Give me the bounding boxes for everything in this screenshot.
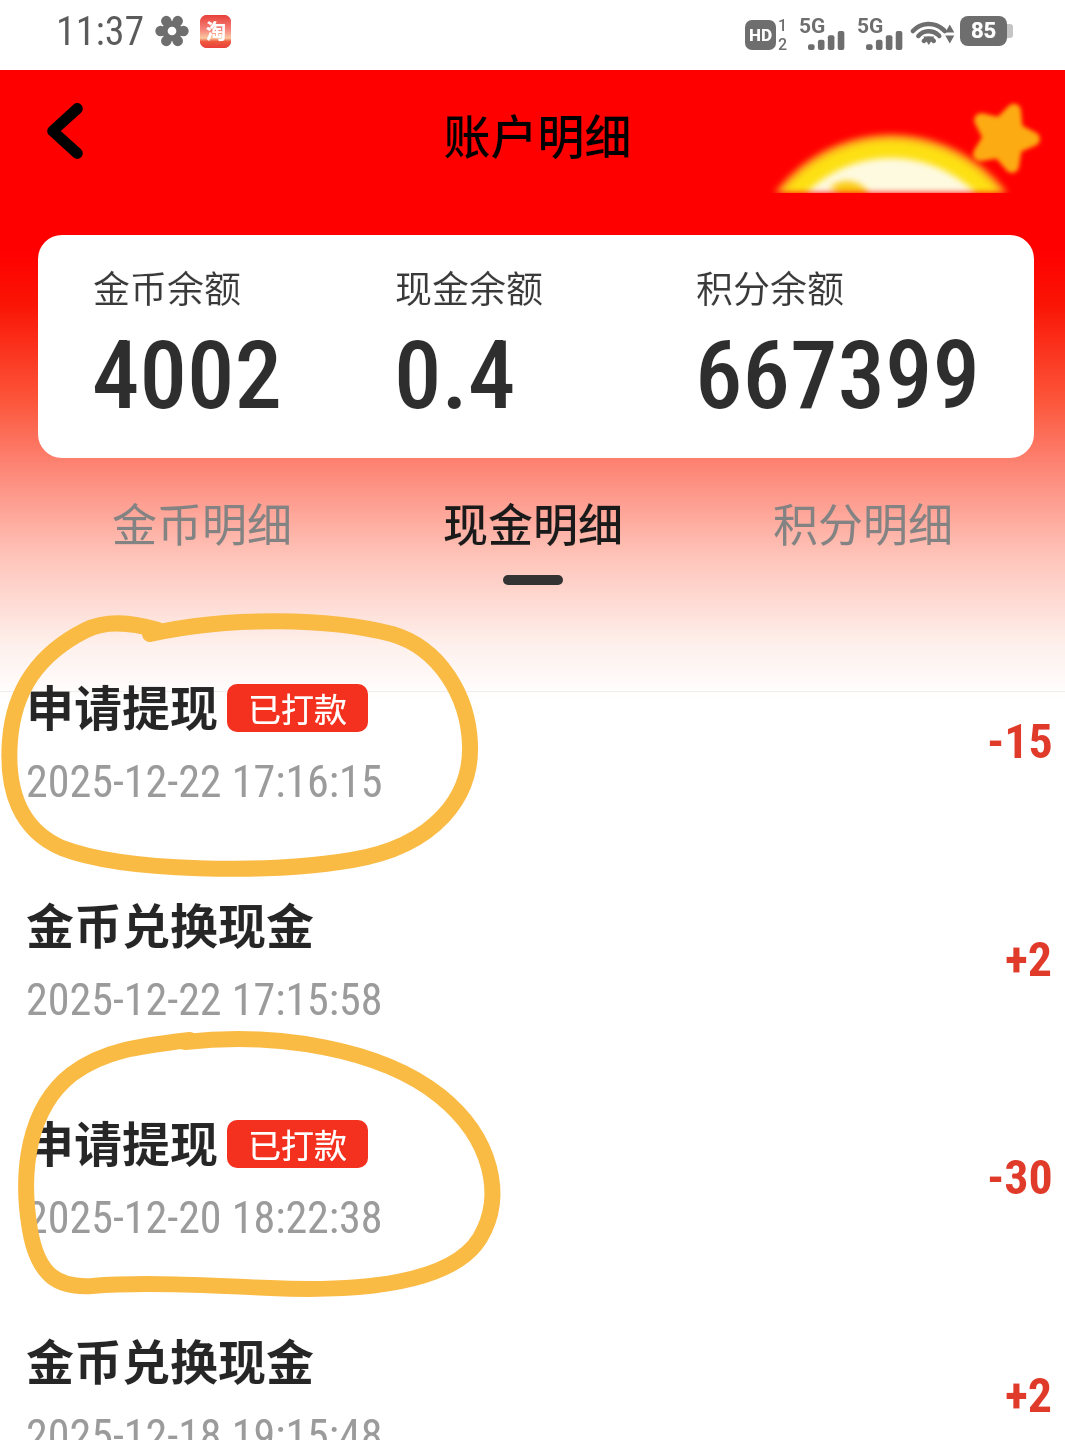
button[interactable]: 金币兑换现金 <box>0 890 1065 1108</box>
staticText: 已打款 <box>248 684 347 732</box>
staticText: 积分明细 <box>773 490 954 555</box>
staticText: 金币兑换现金 <box>26 888 315 958</box>
button[interactable]: 现金明细 <box>368 481 698 585</box>
staticText: +2 <box>1005 931 1053 987</box>
staticText: 4002 <box>92 320 282 431</box>
staticText: 5G <box>799 14 826 39</box>
staticText: 已打款 <box>248 1120 347 1168</box>
staticText: HD <box>749 25 773 45</box>
staticText: 现金余额 <box>395 260 543 314</box>
staticText: 2 <box>778 35 788 54</box>
staticText: 2025-12-22 17:15:58 <box>26 974 383 1026</box>
button[interactable]: 申请提现 <box>0 1108 1065 1326</box>
staticText: 申请提现 <box>26 670 219 740</box>
staticText: 2025-12-22 17:16:15 <box>26 756 383 808</box>
staticText: 1 <box>778 16 788 35</box>
button[interactable]: 金币兑换现金 <box>0 1326 1065 1440</box>
staticText: 申请提现 <box>26 1106 219 1176</box>
staticText: 5G <box>857 14 884 39</box>
staticText: -30 <box>987 1149 1053 1205</box>
staticText: 2025-12-18 19:15:48 <box>26 1410 383 1440</box>
staticText: 金币余额 <box>93 260 241 314</box>
staticText: 金币兑换现金 <box>26 1324 315 1394</box>
staticText: +2 <box>1005 1367 1053 1423</box>
button[interactable]: Back <box>26 92 104 170</box>
staticText: 2025-12-20 18:22:38 <box>26 1192 383 1244</box>
staticText: 667399 <box>695 320 980 431</box>
button[interactable]: 申请提现 <box>0 672 1065 890</box>
staticText: 积分余额 <box>696 260 844 314</box>
button[interactable]: 金币明细 <box>37 481 368 575</box>
staticText: 金币明细 <box>112 490 293 555</box>
staticText: 0.4 <box>394 320 516 431</box>
staticText: 淘 <box>206 16 226 45</box>
staticText: 账户明细 <box>5 99 1065 167</box>
staticText: 11:37 <box>56 8 145 55</box>
button[interactable]: 积分明细 <box>698 481 1028 575</box>
staticText: 85 <box>971 18 997 44</box>
staticText: 现金明细 <box>443 490 624 555</box>
staticText: -15 <box>987 713 1053 769</box>
